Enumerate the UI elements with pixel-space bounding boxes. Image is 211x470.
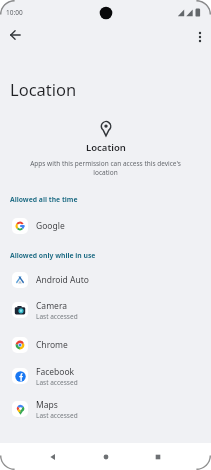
staticText: Maps [36, 399, 58, 411]
button[interactable]: Maps [0, 394, 211, 424]
button[interactable]: Google [0, 211, 211, 241]
button[interactable]: Camera [0, 295, 211, 325]
button[interactable]: Android Auto [0, 265, 211, 295]
staticText: Camera [36, 300, 67, 312]
staticText: Google [36, 220, 65, 232]
staticText: Last accessed [36, 378, 78, 387]
staticText: Facebook [36, 366, 75, 378]
button[interactable] [190, 27, 210, 47]
staticText: Chrome [36, 339, 68, 351]
button[interactable]: Facebook [0, 361, 211, 391]
staticText: 10:00 [6, 8, 23, 17]
staticText: Last accessed [36, 312, 78, 321]
staticText: Location [10, 78, 77, 100]
button[interactable] [35, 443, 71, 470]
staticText: Location [86, 141, 126, 154]
button[interactable]: Chrome [0, 330, 211, 360]
staticText: Android Auto [36, 274, 89, 286]
staticText: Allowed all the time [10, 195, 78, 204]
button[interactable] [87, 443, 124, 470]
staticText: Allowed only while in use [10, 251, 96, 260]
staticText: Apps with this permission can access thi… [30, 159, 181, 177]
button[interactable] [4, 24, 26, 46]
staticText: Last accessed [36, 411, 78, 420]
button[interactable] [140, 443, 176, 470]
